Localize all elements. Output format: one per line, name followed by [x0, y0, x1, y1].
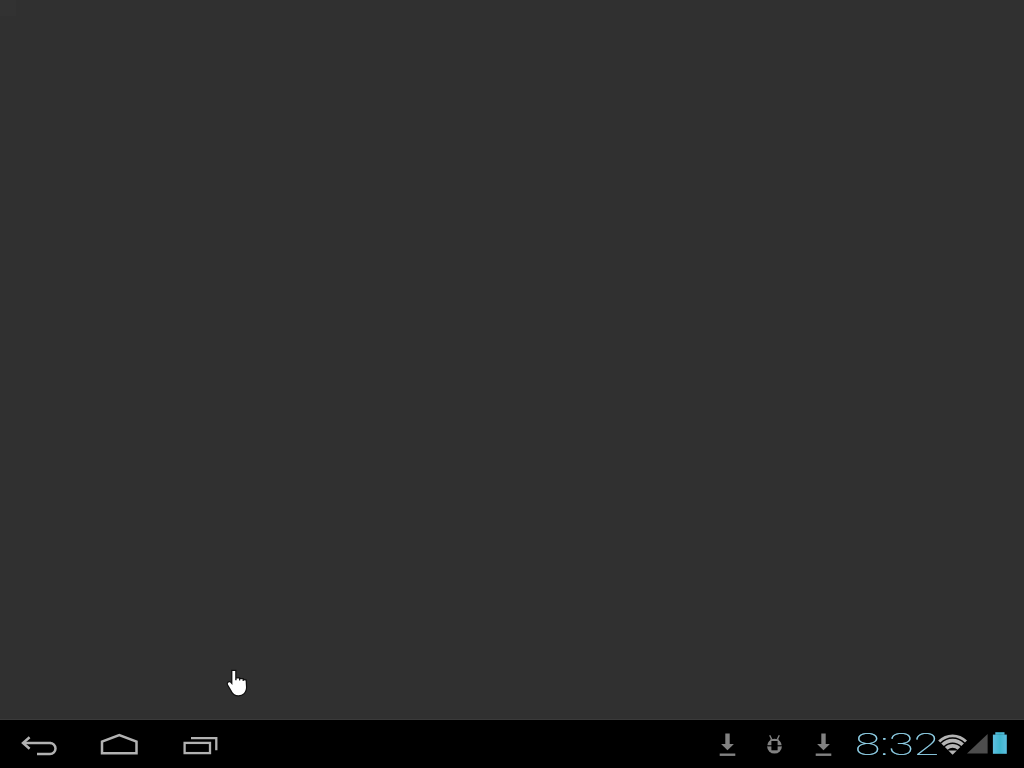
button[interactable]: Wi-Fi signal full [938, 732, 968, 756]
button[interactable]: Clock, 8:32 [855, 724, 939, 764]
button[interactable]: Download complete [712, 728, 744, 758]
button[interactable]: Battery full [990, 730, 1010, 756]
button[interactable]: Home [93, 722, 145, 766]
button[interactable]: USB debugging connected [759, 728, 791, 758]
staticText: 8:32 [855, 726, 940, 762]
button[interactable]: Downloading [808, 728, 840, 758]
button[interactable]: Back [14, 722, 66, 766]
button[interactable]: Mobile signal [965, 732, 990, 756]
button[interactable]: Recent apps [174, 722, 226, 766]
